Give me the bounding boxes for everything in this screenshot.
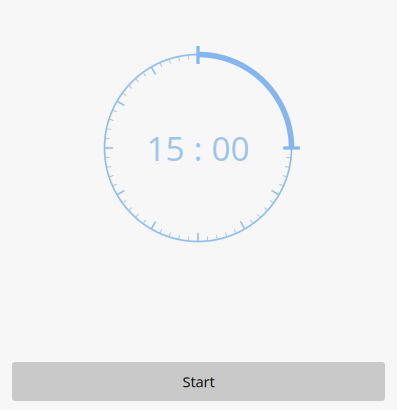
staticText: Start bbox=[182, 372, 214, 391]
button[interactable]: Start bbox=[12, 362, 385, 401]
staticText: 15 : 00 bbox=[146, 126, 249, 170]
